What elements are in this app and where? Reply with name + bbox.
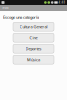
staticText: Cine [29,35,37,40]
staticText: Escoge una categoría [3,14,39,20]
button[interactable]: Música [13,55,54,64]
button[interactable]: Cultura General [13,22,54,31]
staticText: Música [27,57,40,62]
button[interactable]: Deportes [13,44,54,53]
staticText: Trivia [2,6,8,10]
staticText: Deportes [25,46,41,51]
staticText: 4:48 [58,1,65,4]
staticText: Cultura General [19,24,47,29]
button[interactable]: Cine [13,33,54,42]
